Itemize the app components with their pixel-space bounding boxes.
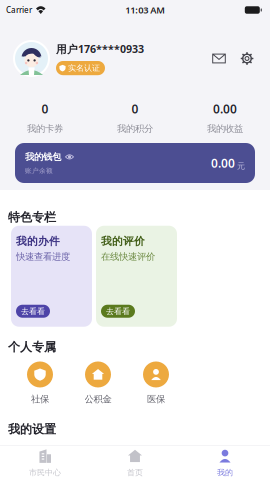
- staticText: 0.00: [213, 101, 237, 117]
- button[interactable]: Messages: [208, 47, 230, 69]
- staticText: 首页: [127, 468, 143, 477]
- staticText: 元: [237, 161, 245, 171]
- staticText: 账户余额: [25, 167, 53, 175]
- staticText: 11:03 AM: [125, 4, 165, 16]
- staticText: 医保: [147, 393, 165, 405]
- staticText: 在线快速评价: [101, 251, 155, 262]
- staticText: 我的评价: [101, 235, 145, 248]
- button[interactable]: 市民中心: [0, 446, 90, 480]
- staticText: 去看看: [106, 306, 130, 316]
- button[interactable]: 我的: [180, 446, 270, 480]
- button[interactable]: Settings: [236, 47, 258, 69]
- staticText: 用户176****0933: [56, 42, 144, 56]
- staticText: 去看看: [21, 306, 45, 316]
- staticText: 特色专栏: [8, 210, 56, 225]
- staticText: 0.00: [211, 155, 235, 171]
- button[interactable]: 我的钱包: [0, 143, 270, 190]
- button[interactable]: 我的评价: [96, 226, 177, 327]
- staticText: 快速查看进度: [16, 251, 70, 262]
- button[interactable]: 0: [0, 101, 90, 134]
- staticText: 我的设置: [8, 422, 56, 437]
- button[interactable]: 公积金: [69, 361, 127, 405]
- button[interactable]: 0.00: [180, 101, 270, 134]
- staticText: 我的积分: [117, 123, 153, 134]
- button[interactable]: 社保: [11, 361, 69, 405]
- button[interactable]: 我的办件: [11, 226, 92, 327]
- staticText: 社保: [31, 393, 49, 405]
- staticText: 我的: [217, 468, 233, 477]
- staticText: Carrier: [6, 5, 32, 15]
- button[interactable]: 0: [90, 101, 180, 134]
- staticText: 我的收益: [207, 123, 243, 134]
- staticText: 0: [41, 101, 48, 117]
- staticText: 0: [131, 101, 138, 117]
- staticText: 我的钱包: [25, 151, 61, 163]
- staticText: 实名认证: [68, 63, 100, 73]
- staticText: 公积金: [84, 393, 111, 405]
- button[interactable]: 医保: [127, 361, 185, 405]
- staticText: 个人专属: [8, 340, 56, 354]
- staticText: 市民中心: [29, 468, 61, 477]
- staticText: 我的办件: [16, 235, 60, 248]
- staticText: 我的卡券: [27, 123, 63, 134]
- button[interactable]: 首页: [90, 446, 180, 480]
